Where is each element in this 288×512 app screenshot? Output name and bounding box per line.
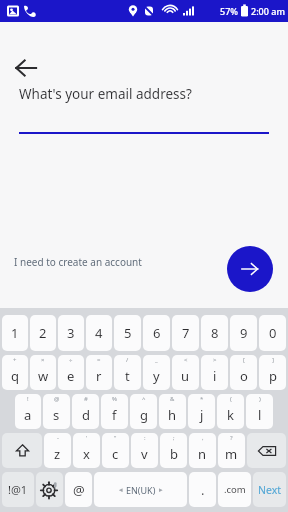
button[interactable]: ] (259, 355, 286, 390)
staticText: I need to create an account (14, 255, 142, 269)
button[interactable]: [ (230, 355, 257, 390)
button[interactable]: # (72, 394, 99, 429)
staticText: p (269, 367, 277, 385)
staticText: × (41, 356, 45, 364)
button[interactable]: * (188, 394, 215, 429)
staticText: 5 (124, 324, 132, 342)
button[interactable]: !@1 (2, 472, 34, 507)
button[interactable]: ÷ (58, 355, 84, 390)
button[interactable]: & (159, 394, 186, 429)
staticText: 9 (240, 324, 248, 342)
button[interactable]: ! (15, 394, 41, 429)
button[interactable]: " (102, 433, 129, 468)
staticText: - (57, 434, 59, 442)
button[interactable]: > (201, 355, 228, 390)
staticText: h (168, 406, 177, 424)
button[interactable]: 9 (230, 315, 257, 351)
button[interactable]: Back (6, 48, 46, 88)
button[interactable]: Space (94, 472, 187, 507)
staticText: # (84, 395, 88, 403)
button[interactable]: 4 (86, 315, 112, 351)
staticText: ? (230, 434, 233, 442)
staticText: 0 (269, 324, 277, 342)
staticText: j (200, 406, 204, 424)
button[interactable]: @ (43, 394, 70, 429)
staticText: . (201, 481, 205, 499)
staticText: c (112, 445, 119, 463)
staticText: d (82, 406, 90, 424)
staticText: > (213, 356, 217, 364)
button[interactable]: I need to create an account (10, 251, 146, 273)
button[interactable]: ? (218, 433, 245, 468)
staticText: < (184, 356, 188, 364)
staticText: z (54, 445, 61, 463)
staticText: : (144, 434, 146, 442)
staticText: ; (173, 434, 175, 442)
staticText: 57% (220, 5, 238, 17)
staticText: t (125, 367, 130, 385)
button[interactable]: < (172, 355, 199, 390)
button[interactable]: .com (218, 472, 251, 507)
staticText: l (258, 406, 262, 424)
button[interactable]: 8 (201, 315, 228, 351)
staticText: 4 (95, 324, 103, 342)
staticText: r (96, 367, 102, 385)
staticText: , (202, 434, 204, 442)
staticText: " (114, 434, 117, 442)
button[interactable]: 1 (2, 315, 28, 351)
button[interactable]: 3 (58, 315, 84, 351)
button[interactable]: Next (253, 472, 286, 507)
button[interactable]: : (131, 433, 158, 468)
staticText: ] (272, 356, 274, 364)
staticText: _ (155, 356, 158, 364)
staticText: ) (259, 395, 261, 403)
staticText: ÷ (69, 356, 73, 364)
button[interactable]: × (30, 355, 56, 390)
button[interactable]: 6 (143, 315, 170, 351)
staticText: [ (243, 356, 245, 364)
staticText: % (112, 395, 117, 403)
staticText: / (126, 356, 129, 364)
button[interactable]: ' (73, 433, 100, 468)
button[interactable]: - (44, 433, 71, 468)
staticText: w (38, 367, 49, 385)
button[interactable]: . (189, 472, 216, 507)
button[interactable]: % (101, 394, 128, 429)
button[interactable]: , (189, 433, 216, 468)
staticText: y (153, 367, 160, 385)
button[interactable]: Continue (227, 246, 273, 292)
button[interactable]: ; (160, 433, 187, 468)
button[interactable]: = (86, 355, 112, 390)
button[interactable]: + (2, 355, 28, 390)
staticText: i (213, 367, 217, 385)
staticText: = (97, 356, 101, 364)
button[interactable]: 0 (259, 315, 286, 351)
button[interactable]: @ (65, 472, 92, 507)
button[interactable]: 5 (114, 315, 141, 351)
staticText: g (140, 406, 148, 424)
staticText: EN(UK) (126, 484, 156, 496)
button[interactable]: / (114, 355, 141, 390)
button[interactable]: ( (217, 394, 244, 429)
staticText: @ (54, 395, 60, 403)
staticText: ▸ (159, 486, 163, 494)
button[interactable]: _ (143, 355, 170, 390)
staticText: ( (230, 395, 232, 403)
staticText: m (225, 445, 238, 463)
staticText: 8 (211, 324, 219, 342)
button[interactable]: ^ (130, 394, 157, 429)
button[interactable]: Keyboard settings (36, 472, 63, 507)
button[interactable]: ) (246, 394, 273, 429)
staticText: .com (224, 483, 246, 496)
staticText: s (53, 406, 60, 424)
staticText: n (198, 445, 207, 463)
staticText: ! (27, 395, 29, 403)
button[interactable]: Shift (2, 433, 42, 468)
staticText: 7 (182, 324, 190, 342)
button[interactable]: 7 (172, 315, 199, 351)
staticText: v (141, 445, 148, 463)
staticText: ' (86, 434, 88, 442)
button[interactable]: Backspace (247, 433, 286, 468)
button[interactable]: 2 (30, 315, 56, 351)
staticText: 6 (153, 324, 161, 342)
